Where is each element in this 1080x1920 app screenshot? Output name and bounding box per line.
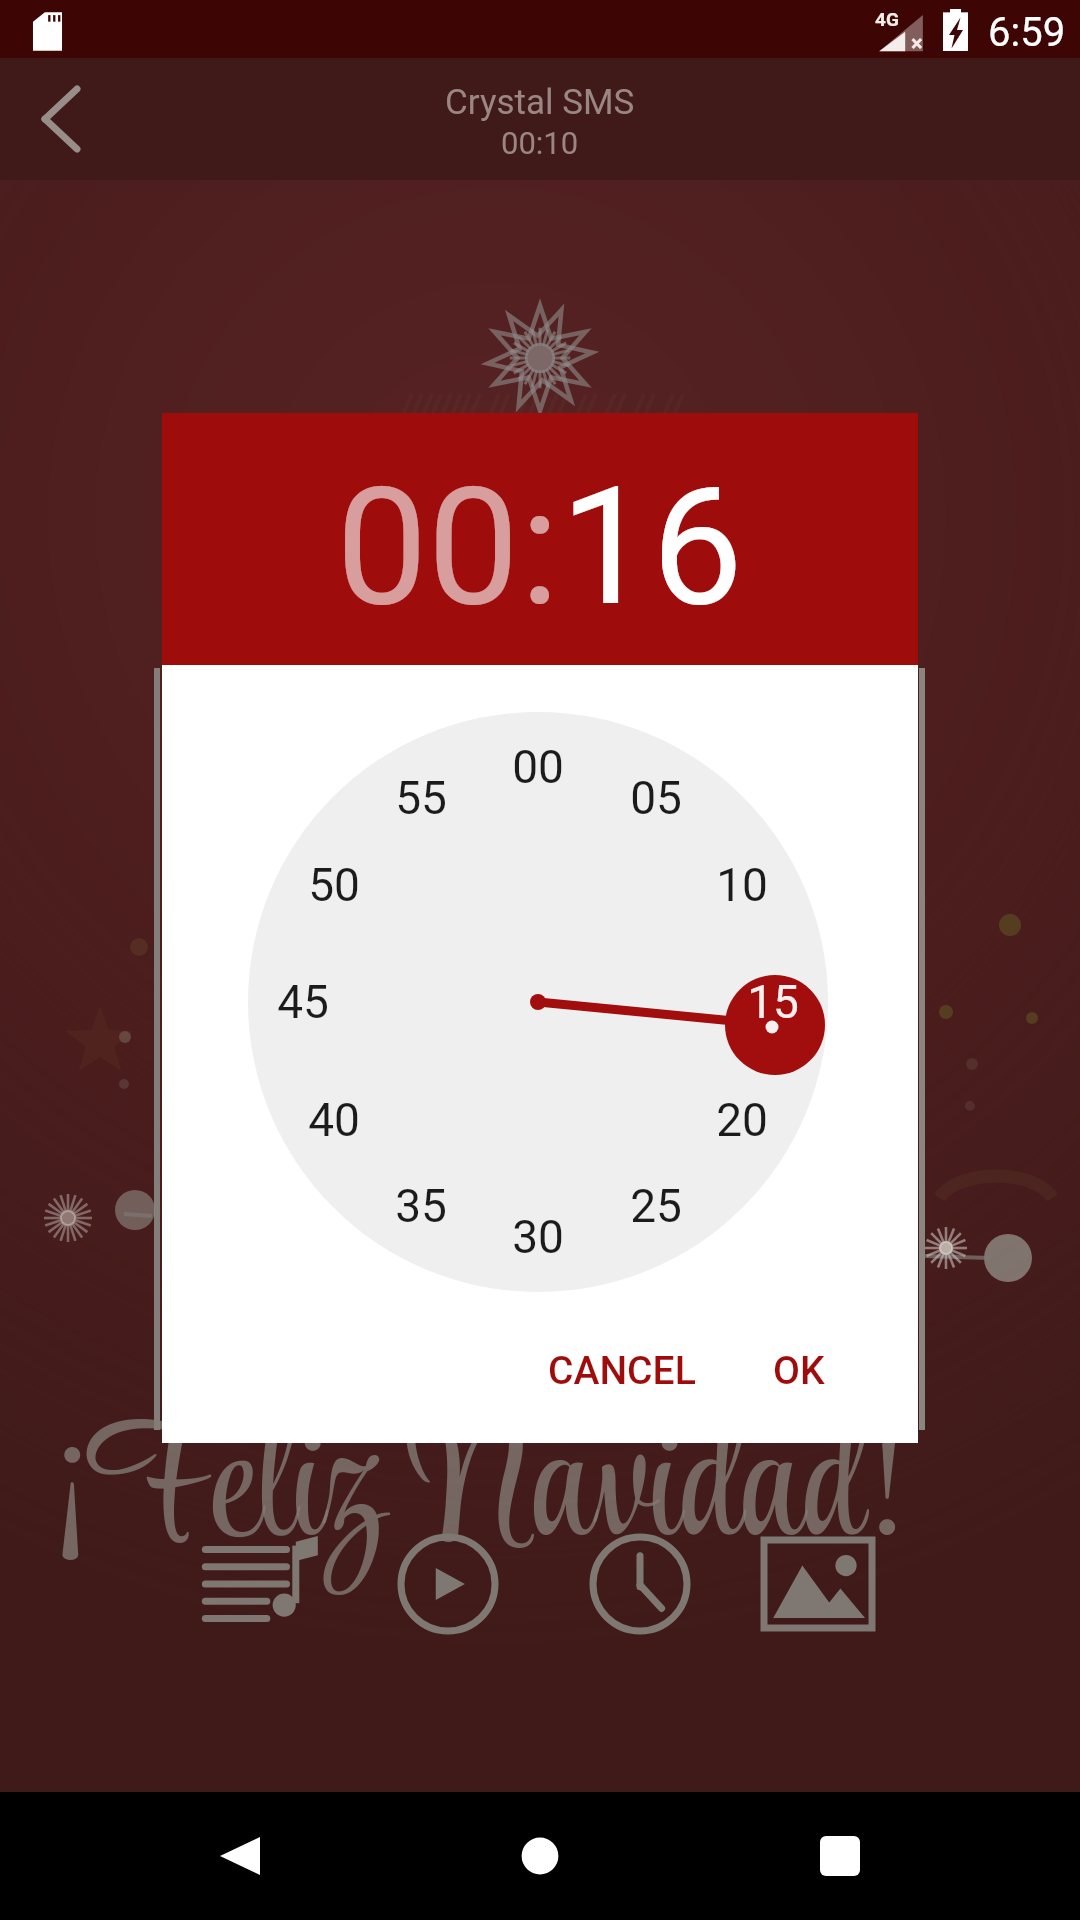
staticText: 00:10 <box>501 125 579 161</box>
staticText: 25 <box>630 1179 682 1233</box>
staticText: 30 <box>512 1210 564 1264</box>
staticText: OK <box>773 1348 825 1394</box>
button[interactable]: Navigate up <box>8 66 114 172</box>
staticText: : <box>520 452 560 643</box>
staticText: Crystal SMS <box>445 82 635 123</box>
button[interactable]: Recent apps <box>780 1796 900 1916</box>
staticText: 10 <box>716 858 768 912</box>
button[interactable]: OK <box>751 1332 847 1410</box>
button[interactable]: 00 <box>336 452 520 643</box>
staticText: CANCEL <box>548 1348 696 1394</box>
staticText: 00 <box>512 740 564 794</box>
staticText: ¡Feliz Navidad! <box>46 1368 902 1620</box>
button[interactable]: 16 <box>560 452 744 643</box>
staticText: × <box>911 31 923 57</box>
button[interactable]: Image <box>728 1514 908 1654</box>
staticText: 15 <box>747 975 799 1029</box>
staticText: 6:59 <box>988 9 1066 56</box>
staticText: 50 <box>308 858 360 912</box>
staticText: 05 <box>630 771 682 825</box>
button[interactable]: Play <box>358 1514 538 1654</box>
staticText: 40 <box>308 1093 360 1147</box>
staticText: 20 <box>716 1093 768 1147</box>
staticText: 45 <box>277 975 329 1029</box>
button[interactable]: Home <box>480 1796 600 1916</box>
button[interactable]: Back <box>180 1796 300 1916</box>
staticText: 35 <box>395 1179 447 1233</box>
staticText: 4G <box>875 8 899 30</box>
staticText: 55 <box>395 771 447 825</box>
button[interactable]: Playlist <box>171 1514 351 1654</box>
button[interactable]: Timer <box>550 1514 730 1654</box>
button[interactable]: CANCEL <box>526 1332 718 1410</box>
